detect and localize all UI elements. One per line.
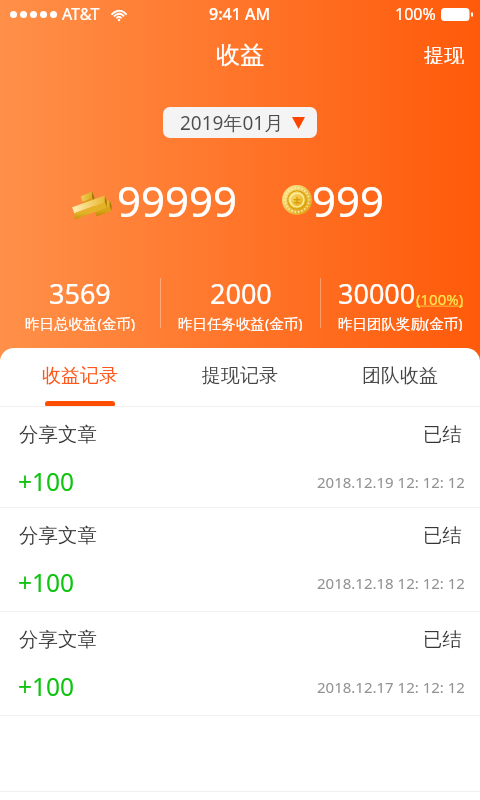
button[interactable]: 分享文章 bbox=[0, 407, 480, 508]
staticText: (100%) bbox=[416, 289, 464, 309]
staticText: 100% bbox=[395, 3, 436, 25]
staticText: 3569 bbox=[49, 275, 111, 312]
staticText: 30000 bbox=[338, 275, 416, 312]
staticText: +100 bbox=[18, 670, 75, 703]
button[interactable]: 2019年01月 bbox=[163, 107, 317, 138]
button[interactable]: 提现 bbox=[409, 38, 480, 70]
button[interactable]: 30000 bbox=[321, 275, 480, 331]
staticText: 2018.12.19 12: 12: 12 bbox=[317, 472, 465, 492]
button[interactable]: 2000 bbox=[161, 275, 320, 331]
button[interactable]: 团队收益 bbox=[320, 348, 480, 406]
staticText: 2019年01月 bbox=[180, 110, 284, 136]
staticText: 团队收益 bbox=[362, 364, 438, 388]
staticText: 昨日团队奖励(金币) bbox=[338, 313, 463, 331]
staticText: 2000 bbox=[210, 275, 272, 312]
staticText: 已结 bbox=[423, 627, 462, 652]
button[interactable]: 分享文章 bbox=[0, 612, 480, 716]
staticText: 收益记录 bbox=[42, 364, 118, 388]
staticText: +100 bbox=[18, 465, 75, 498]
button[interactable]: 收益记录 bbox=[0, 348, 160, 406]
button[interactable]: 分享文章 bbox=[0, 508, 480, 612]
staticText: 已结 bbox=[423, 523, 462, 548]
staticText: 分享文章 bbox=[19, 627, 97, 652]
staticText: 提现 bbox=[424, 44, 464, 64]
staticText: +100 bbox=[18, 566, 75, 599]
staticText: 已结 bbox=[423, 422, 462, 447]
staticText: 分享文章 bbox=[19, 523, 97, 548]
staticText: 收益 bbox=[216, 40, 264, 70]
staticText: 9:41 AM bbox=[209, 3, 271, 25]
staticText: AT&T bbox=[62, 3, 100, 25]
staticText: 99999 bbox=[117, 172, 238, 228]
button[interactable]: 提现记录 bbox=[160, 348, 320, 406]
staticText: 2018.12.17 12: 12: 12 bbox=[317, 677, 465, 697]
staticText: 2018.12.18 12: 12: 12 bbox=[317, 573, 465, 593]
staticText: 999 bbox=[312, 172, 385, 228]
button[interactable]: 3569 bbox=[0, 275, 160, 331]
staticText: 昨日任务收益(金币) bbox=[178, 313, 303, 331]
staticText: 昨日总收益(金币) bbox=[25, 313, 136, 331]
staticText: 分享文章 bbox=[19, 422, 97, 447]
staticText: 提现记录 bbox=[202, 364, 278, 388]
